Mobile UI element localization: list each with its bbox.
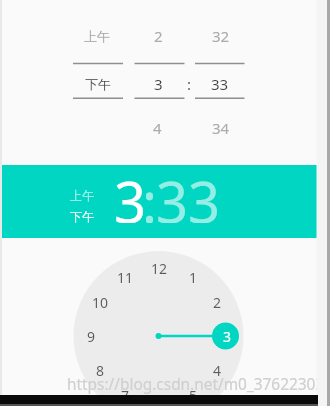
button[interactable]: 3 bbox=[98, 54, 218, 114]
staticText: 上午 bbox=[84, 28, 110, 44]
button[interactable]: 3 bbox=[70, 163, 190, 223]
button[interactable]: 3 bbox=[167, 306, 287, 366]
button[interactable]: 下午 bbox=[22, 186, 142, 246]
staticText: 33 bbox=[211, 74, 229, 94]
button[interactable]: 34 bbox=[161, 98, 281, 158]
staticText: 6 bbox=[155, 395, 164, 406]
staticText: 3 bbox=[114, 163, 147, 223]
button[interactable]: 上午 bbox=[22, 165, 142, 225]
button[interactable]: 上午 bbox=[37, 6, 157, 66]
staticText: 32 bbox=[212, 26, 230, 46]
staticText: 11 bbox=[117, 268, 134, 287]
staticText: 12 bbox=[151, 259, 168, 278]
staticText: 33 bbox=[156, 163, 221, 223]
staticText: 上午 bbox=[70, 188, 94, 203]
staticText: 8 bbox=[96, 361, 105, 380]
staticText: 10 bbox=[92, 293, 109, 312]
button[interactable]: 下午 bbox=[38, 54, 158, 114]
button[interactable]: 2 bbox=[98, 6, 218, 66]
staticText: 3 bbox=[223, 327, 232, 346]
staticText: 2 bbox=[154, 26, 163, 46]
staticText: 下午 bbox=[70, 209, 94, 224]
staticText: 3 bbox=[154, 74, 163, 94]
button[interactable]: 33 bbox=[128, 163, 248, 223]
staticText: 34 bbox=[212, 118, 230, 138]
staticText: https://blog.csdn.net/m0_37622302 bbox=[67, 374, 325, 395]
staticText: 4 bbox=[213, 361, 222, 380]
staticText: 7 bbox=[121, 386, 130, 405]
staticText: 下午 bbox=[85, 76, 111, 92]
staticText: 4 bbox=[153, 118, 162, 138]
staticText: : bbox=[142, 163, 158, 223]
button[interactable]: 4 bbox=[97, 98, 217, 158]
staticText: 2 bbox=[213, 293, 222, 312]
staticText: : bbox=[187, 74, 192, 94]
button[interactable]: 32 bbox=[161, 6, 281, 66]
staticText: 1 bbox=[189, 268, 198, 287]
button[interactable]: 33 bbox=[160, 54, 280, 114]
staticText: 9 bbox=[87, 327, 96, 346]
staticText: 5 bbox=[189, 386, 198, 405]
